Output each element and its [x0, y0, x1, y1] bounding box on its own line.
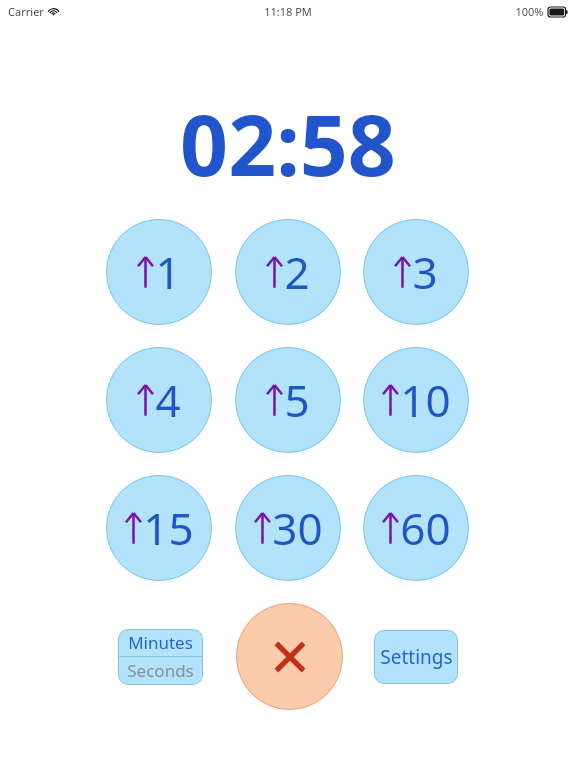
staticText: 2	[284, 242, 310, 302]
button[interactable]: 4	[106, 347, 212, 453]
staticText: 30	[272, 498, 323, 558]
button[interactable]: Settings	[374, 630, 458, 684]
staticText: 1	[155, 242, 181, 302]
button[interactable]: 60	[363, 475, 469, 581]
staticText: Seconds	[127, 659, 194, 682]
button[interactable]: 1	[106, 219, 212, 325]
button[interactable]: Minutes	[118, 629, 203, 656]
button[interactable]: 2	[235, 219, 341, 325]
staticText: 3	[412, 242, 438, 302]
staticText: Carrier	[8, 4, 44, 19]
staticText: 02:58	[180, 86, 396, 190]
button[interactable]: 15	[106, 475, 212, 581]
button[interactable]: 10	[363, 347, 469, 453]
button[interactable]: Seconds	[118, 657, 203, 683]
button[interactable]: Cancel timer	[236, 603, 343, 710]
staticText: 4	[155, 370, 181, 430]
button[interactable]: 30	[235, 475, 341, 581]
staticText: 60	[400, 498, 451, 558]
staticText: 11:18 PM	[264, 4, 312, 19]
staticText: 5	[284, 370, 310, 430]
staticText: 100%	[515, 4, 544, 19]
staticText: 10	[400, 370, 451, 430]
button[interactable]: 5	[235, 347, 341, 453]
button[interactable]: 3	[363, 219, 469, 325]
staticText: 15	[143, 498, 194, 558]
staticText: Settings	[380, 644, 453, 670]
staticText: Minutes	[128, 631, 193, 654]
